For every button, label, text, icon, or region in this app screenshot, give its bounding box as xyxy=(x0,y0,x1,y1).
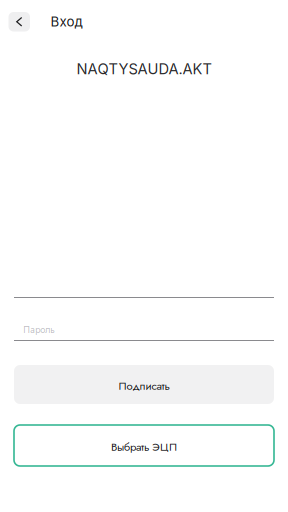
button[interactable]: Выбрать ЭЦП xyxy=(14,425,274,466)
staticText: Пароль xyxy=(23,323,55,336)
staticText: Выбрать ЭЦП xyxy=(111,439,177,455)
button[interactable]: Подписать xyxy=(14,365,274,404)
button[interactable]: Back xyxy=(8,12,30,31)
button[interactable]: Вход xyxy=(50,14,82,30)
staticText: Вход xyxy=(50,14,82,30)
staticText: NAQTYSAUDA.AKT xyxy=(76,60,211,78)
staticText: Подписать xyxy=(118,378,169,394)
